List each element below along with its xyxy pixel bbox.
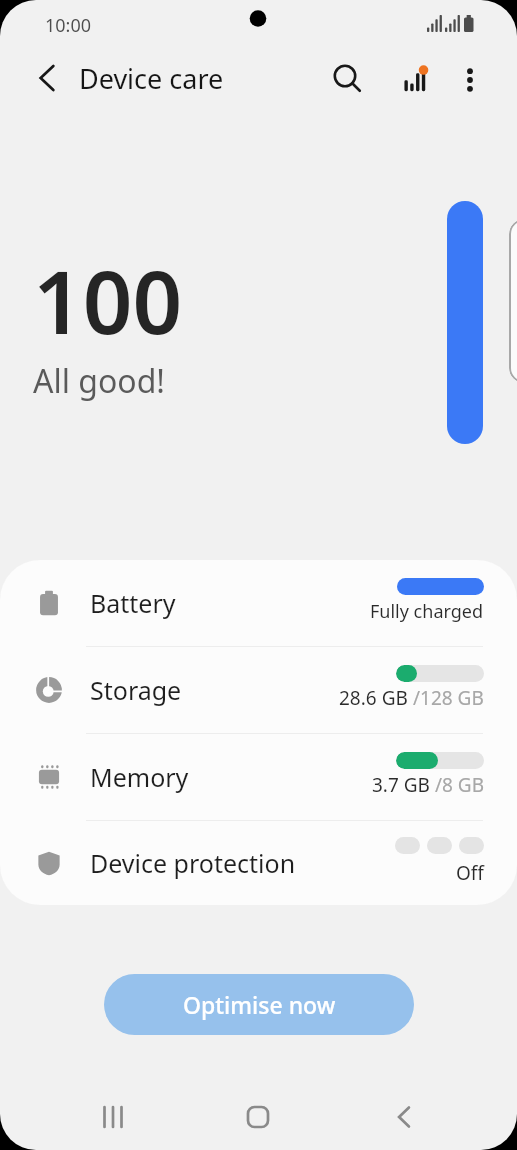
staticText: Fully charged bbox=[370, 599, 484, 624]
button[interactable]: Search bbox=[324, 55, 372, 103]
staticText: Device protection bbox=[90, 846, 296, 880]
staticText: 3.7 GB bbox=[372, 772, 430, 798]
button[interactable]: Home bbox=[226, 1090, 290, 1144]
button[interactable]: Recent apps bbox=[81, 1090, 145, 1144]
staticText: Memory bbox=[90, 760, 189, 794]
staticText: Device care bbox=[79, 60, 224, 97]
button[interactable]: Storage bbox=[0, 647, 517, 733]
staticText: Battery bbox=[90, 586, 176, 620]
button[interactable]: Optimise now bbox=[104, 974, 414, 1035]
staticText: 28.6 GB bbox=[339, 685, 408, 711]
button[interactable]: Device protection bbox=[0, 821, 517, 905]
button[interactable]: Memory bbox=[0, 734, 517, 820]
staticText: 10:00 bbox=[45, 13, 92, 38]
staticText: /8 GB bbox=[430, 772, 484, 798]
staticText: /128 GB bbox=[408, 685, 484, 711]
staticText: All good! bbox=[33, 359, 165, 403]
button[interactable]: More options bbox=[446, 56, 494, 104]
staticText: Optimise now bbox=[183, 989, 336, 1020]
staticText: Storage bbox=[90, 673, 182, 707]
staticText: 100 bbox=[33, 241, 183, 359]
button[interactable]: Back bbox=[371, 1090, 435, 1144]
button[interactable]: Battery bbox=[0, 560, 517, 646]
button[interactable]: Diagnostics bbox=[391, 55, 439, 103]
staticText: Off bbox=[456, 860, 484, 886]
button[interactable]: Back bbox=[22, 52, 70, 100]
